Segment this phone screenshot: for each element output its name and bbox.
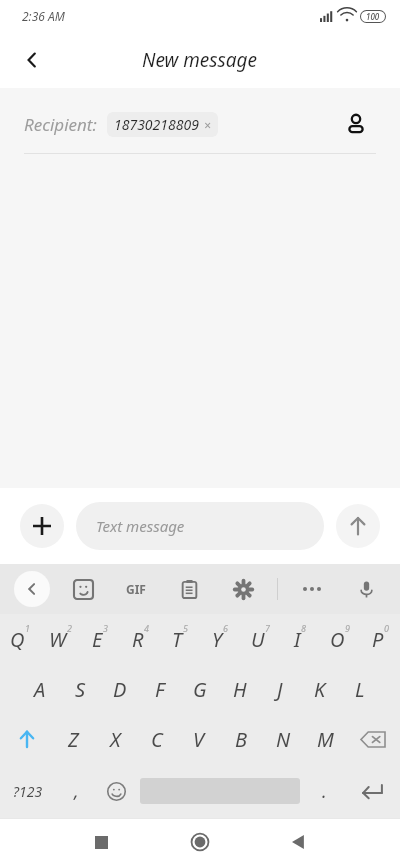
button[interactable]: R — [120, 614, 160, 664]
button[interactable]: Attach — [20, 504, 64, 548]
staticText: M — [317, 726, 334, 753]
staticText: Z — [68, 726, 79, 753]
staticText: 8 — [301, 622, 306, 634]
button[interactable]: V — [178, 714, 220, 764]
button[interactable]: Text message — [76, 502, 324, 550]
staticText: 18730218809 — [114, 115, 199, 134]
button[interactable]: GIF — [116, 569, 156, 609]
button[interactable]: , — [56, 764, 96, 818]
button[interactable]: Z — [53, 714, 94, 764]
staticText: B — [235, 726, 247, 753]
staticText: A — [34, 676, 46, 703]
staticText: 2 — [67, 622, 72, 634]
button[interactable]: Shift — [0, 714, 53, 764]
button[interactable]: G — [180, 664, 220, 714]
button[interactable]: S — [60, 664, 100, 714]
staticText: 5 — [183, 622, 188, 634]
button[interactable]: Voice input — [346, 569, 386, 609]
staticText: 4 — [144, 622, 149, 634]
button[interactable]: Backspace — [346, 714, 400, 764]
staticText: W — [49, 626, 67, 653]
staticText: S — [75, 676, 86, 703]
button[interactable]: Send — [336, 504, 380, 548]
staticText: U — [251, 626, 265, 653]
button[interactable]: Home — [176, 818, 224, 866]
button[interactable]: Clipboard — [169, 569, 209, 609]
button[interactable]: Stickers — [63, 569, 103, 609]
button[interactable]: L — [340, 664, 380, 714]
staticText: GIF — [126, 581, 146, 597]
button[interactable]: E — [80, 614, 120, 664]
staticText: × — [204, 117, 211, 133]
staticText: N — [276, 726, 291, 753]
staticText: V — [193, 726, 205, 753]
staticText: 9 — [345, 622, 350, 634]
button[interactable]: J — [260, 664, 300, 714]
button[interactable]: C — [136, 714, 178, 764]
button[interactable]: H — [220, 664, 260, 714]
button[interactable]: Q — [0, 614, 40, 664]
staticText: 1 — [25, 622, 30, 634]
button[interactable]: Recents — [77, 818, 125, 866]
staticText: Text message — [96, 516, 185, 536]
staticText: O — [330, 626, 345, 653]
staticText: L — [355, 676, 365, 703]
staticText: I — [294, 626, 301, 653]
staticText: Y — [212, 626, 223, 653]
button[interactable]: B — [220, 714, 262, 764]
button[interactable]: A — [20, 664, 60, 714]
staticText: 3 — [103, 622, 108, 634]
staticText: J — [277, 676, 283, 703]
button[interactable]: O — [320, 614, 360, 664]
button[interactable]: Settings — [223, 569, 263, 609]
button[interactable]: Collapse toolbar — [14, 571, 50, 607]
staticText: G — [193, 676, 207, 703]
staticText: F — [155, 676, 165, 703]
button[interactable]: N — [262, 714, 304, 764]
staticText: Recipient: — [24, 113, 97, 136]
staticText: X — [110, 726, 121, 753]
staticText: T — [172, 626, 183, 653]
staticText: Q — [10, 626, 25, 653]
button[interactable]: X — [94, 714, 136, 764]
staticText: , — [74, 779, 79, 804]
button[interactable]: . — [304, 764, 344, 818]
staticText: 6 — [223, 622, 228, 634]
button[interactable]: Add contact — [336, 104, 376, 144]
button[interactable]: Back — [275, 818, 323, 866]
button[interactable]: Back — [8, 36, 56, 84]
button[interactable]: I — [280, 614, 320, 664]
staticText: C — [151, 726, 163, 753]
staticText: ?123 — [13, 782, 43, 801]
button[interactable]: K — [300, 664, 340, 714]
staticText: 100 — [366, 11, 380, 22]
staticText: H — [233, 676, 247, 703]
button[interactable]: T — [160, 614, 200, 664]
button[interactable]: Emoji — [96, 764, 136, 818]
button[interactable]: M — [304, 714, 346, 764]
button[interactable]: Enter — [344, 764, 400, 818]
button[interactable]: U — [240, 614, 280, 664]
button[interactable]: 18730218809 — [107, 112, 218, 137]
staticText: D — [113, 676, 127, 703]
staticText: . — [322, 779, 327, 804]
button[interactable]: D — [100, 664, 140, 714]
staticText: K — [314, 676, 326, 703]
button[interactable]: ?123 — [0, 764, 56, 818]
staticText: 7 — [265, 622, 270, 634]
button[interactable]: F — [140, 664, 180, 714]
button[interactable]: W — [40, 614, 80, 664]
staticText: New message — [142, 47, 258, 73]
button[interactable]: P — [360, 614, 400, 664]
staticText: 0 — [384, 622, 389, 634]
button[interactable]: More options — [292, 569, 332, 609]
staticText: R — [132, 626, 144, 653]
staticText: E — [92, 626, 103, 653]
staticText: P — [372, 626, 384, 653]
staticText: 2:36 AM — [22, 8, 65, 24]
button[interactable]: Y — [200, 614, 240, 664]
